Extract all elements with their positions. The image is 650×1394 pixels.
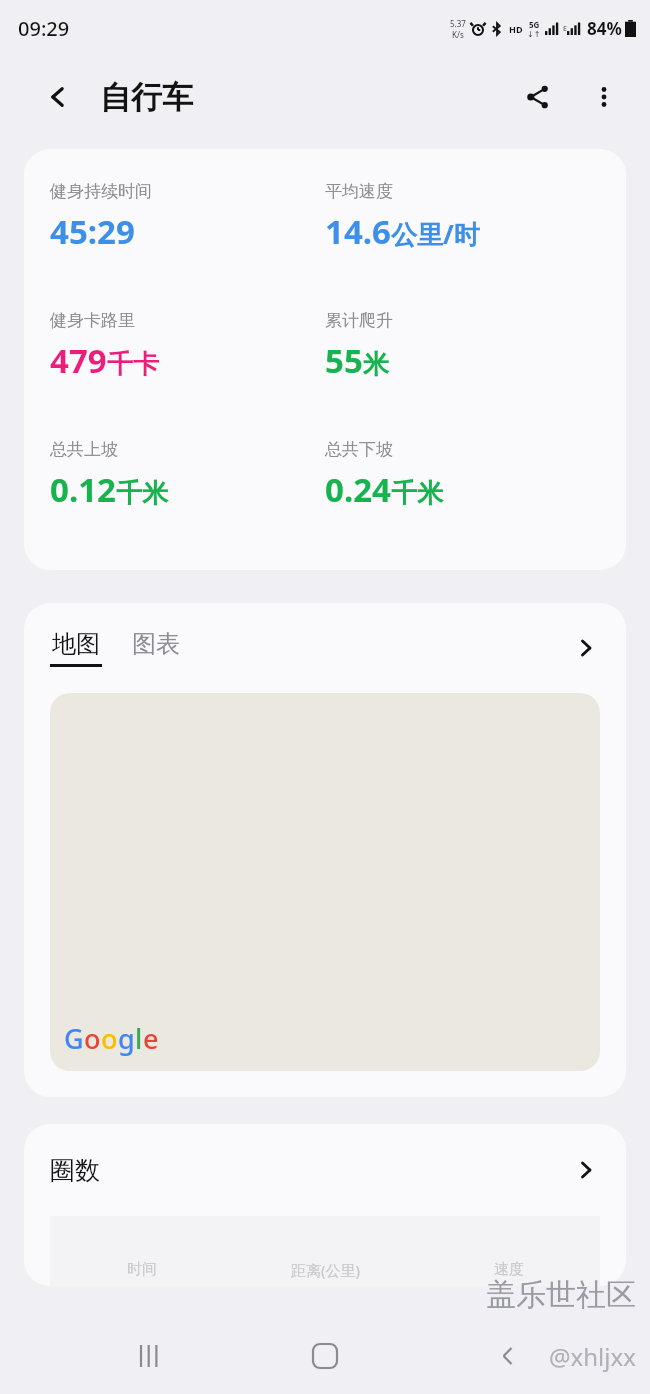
staticText: 45:29 [50,209,135,254]
staticText: 自行车 [100,78,193,117]
staticText: 图表 [132,629,180,659]
staticText: 健身卡路里 [50,310,135,331]
staticText: 距离(公里) [291,1260,361,1280]
staticText: 0.12千米 [50,467,168,512]
staticText: K/s [452,29,464,40]
staticText: l [135,1020,143,1057]
staticText: E [563,24,567,34]
button[interactable]: Back [36,75,80,119]
staticText: @xhljxx [549,1340,636,1373]
staticText: o [101,1020,118,1057]
staticText: 84% [587,17,622,40]
staticText: 总共下坡 [325,439,393,460]
button[interactable]: More options [580,73,628,121]
staticText: ↓↑ [527,30,541,39]
button[interactable]: 地图 [50,629,102,667]
staticText: 479千卡 [50,338,159,383]
button[interactable]: 圈数 [24,1124,626,1216]
staticText: HD [509,23,523,35]
staticText: 5G [529,19,540,30]
staticText: e [143,1020,159,1057]
staticText: 速度 [494,1260,524,1279]
staticText: o [84,1020,101,1057]
button[interactable]: 图表 [132,629,180,667]
staticText: 5.37 [450,18,466,29]
staticText: 圈数 [50,1155,100,1186]
staticText: g [118,1020,135,1057]
button[interactable]: Share [514,73,562,121]
staticText: 时间 [127,1260,157,1279]
staticText: 14.6公里/时 [325,209,480,254]
button[interactable]: Home [299,1330,351,1382]
staticText: 平均速度 [325,181,393,202]
staticText: 55米 [325,338,389,383]
staticText: 健身持续时间 [50,181,152,202]
staticText: 总共上坡 [50,439,118,460]
staticText: G [64,1020,84,1057]
staticText: 0.24千米 [325,467,443,512]
staticText: 盖乐世社区 [486,1276,636,1314]
staticText: 累计爬升 [325,310,393,331]
button[interactable]: Open map [564,626,608,670]
staticText: 地图 [52,629,100,659]
button[interactable]: Back [484,1332,532,1380]
staticText: 09:29 [18,15,70,42]
button[interactable]: Recents [126,1332,174,1380]
